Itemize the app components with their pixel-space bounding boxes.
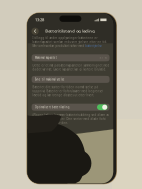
staticText: Batteritilstand og lading [45, 28, 95, 33]
staticText: da det var nytt. Lavere kapasitet kan gi… [32, 68, 106, 71]
staticText: 13:28 [35, 17, 44, 22]
button[interactable]: Optimalisert batterilading [32, 104, 110, 111]
button[interactable]: Tilbake [31, 27, 39, 35]
button[interactable]: Maksimal kapasitet [32, 54, 110, 61]
staticText: batterikapasitet som kan redusere ytelse… [32, 40, 107, 44]
staticText: Evne til maksimal ytelse [35, 78, 65, 81]
staticText: batteriytelse [85, 44, 102, 48]
staticText: Mer om hvordan produktet virker med [32, 44, 84, 48]
staticText: levetid og kan trenge å byttes ut etter … [32, 93, 94, 97]
staticText: Dette er et mål på batterikapasiteten sa… [32, 64, 109, 67]
staticText: Optimalisert batterilading [35, 105, 70, 109]
staticText: iPhone-lading hemmer batteriets aldring … [32, 113, 108, 117]
button[interactable]: Evne til maksimal ytelse [32, 76, 110, 83]
staticText: Batteriet ditt støtter for tiden normal … [32, 85, 97, 89]
staticText: I tillegg til andre opplysninger batteri… [32, 36, 97, 40]
button[interactable]: batteriytelse [85, 44, 102, 48]
staticText: 80 % til du trenger den. [32, 121, 68, 125]
staticText: toppnivå. Batterier er forbruksvarer med… [32, 89, 103, 93]
staticText: Maksimal kapasitet [35, 56, 57, 59]
staticText: dine daglige ladevaner. Den venter med å… [32, 117, 106, 121]
staticText: 97 % [99, 56, 106, 59]
